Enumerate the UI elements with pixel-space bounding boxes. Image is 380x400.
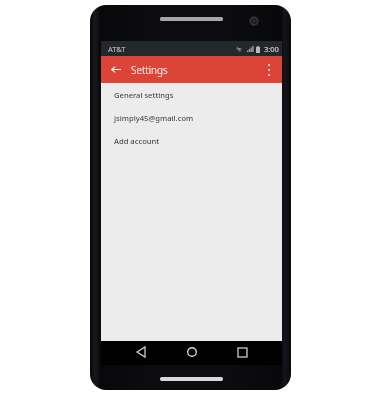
staticText: General settings: [114, 90, 174, 100]
staticText: Settings: [131, 63, 168, 77]
button[interactable]: Recent apps: [227, 340, 257, 364]
button[interactable]: General settings: [101, 83, 282, 106]
staticText: jsimply45@gmail.com: [114, 113, 194, 123]
button[interactable]: jsimply45@gmail.com: [101, 106, 282, 129]
staticText: 3:00: [264, 44, 279, 54]
button[interactable]: Home: [177, 340, 207, 364]
button[interactable]: Back: [126, 340, 156, 364]
button[interactable]: More options: [259, 60, 279, 80]
staticText: AT&T: [108, 44, 126, 54]
button[interactable]: Add account: [101, 129, 282, 152]
button[interactable]: Navigate up: [106, 59, 126, 79]
staticText: Add account: [114, 136, 160, 146]
